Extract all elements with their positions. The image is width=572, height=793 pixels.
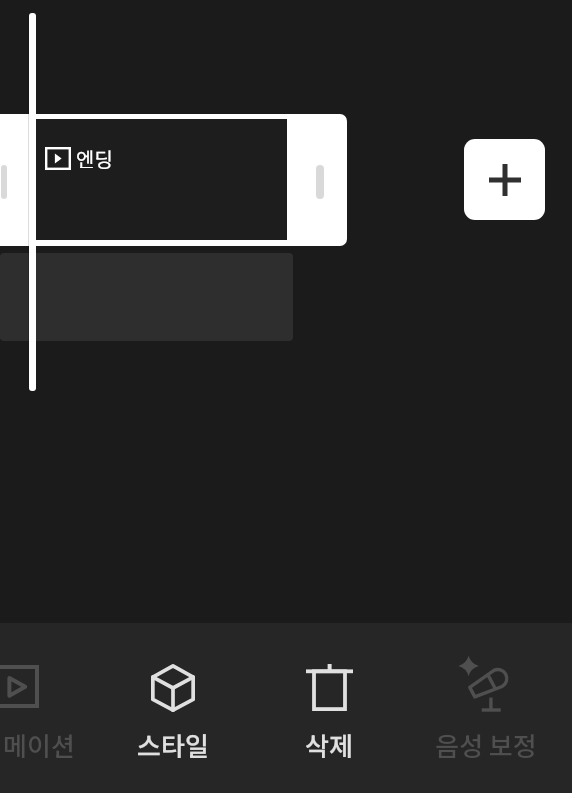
staticText: 삭제 — [305, 726, 353, 764]
other: Playhead — [29, 13, 36, 391]
staticText: 음성 보정 — [435, 726, 537, 764]
button[interactable]: 삭제 — [259, 650, 399, 784]
staticText: 엔딩 — [76, 144, 113, 173]
button[interactable]: 애니메이션 — [0, 650, 85, 784]
button[interactable]: Trim clip end — [316, 165, 324, 199]
button[interactable]: 엔딩 — [0, 114, 347, 246]
button[interactable]: 음성 보정 — [416, 650, 556, 784]
staticText: 애니메이션 — [0, 726, 75, 764]
staticText: 스타일 — [137, 726, 209, 764]
button[interactable]: Audio track clip — [0, 253, 293, 341]
button[interactable]: Add clip — [464, 139, 545, 220]
button[interactable]: Trim clip start — [1, 165, 7, 199]
button[interactable]: 스타일 — [103, 650, 243, 784]
